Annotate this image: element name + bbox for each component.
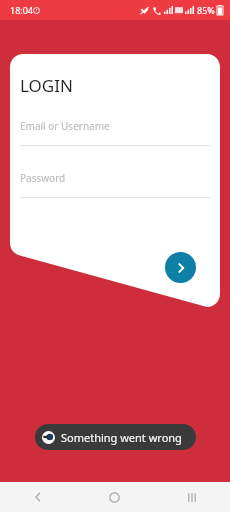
button[interactable]: Password [20,171,210,198]
button[interactable]: Recent apps [153,482,230,512]
staticText: 85% [197,4,215,16]
button[interactable]: Submit login [165,252,196,283]
button[interactable]: Email or Username [20,119,210,146]
button[interactable]: Back [0,482,76,512]
staticText: Email or Username [20,119,110,133]
button[interactable]: Something went wrong [35,424,196,450]
staticText: 18:04 [10,4,34,16]
button[interactable]: Home [76,482,153,512]
staticText: Something went wrong [61,430,182,445]
staticText: Password [20,171,66,185]
staticText: LOGIN [20,74,73,97]
